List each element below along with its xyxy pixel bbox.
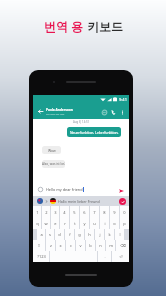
button[interactable]: p	[120, 218, 129, 229]
button[interactable]: 6	[80, 206, 89, 218]
staticText: Hello my dear friend	[46, 187, 83, 192]
button[interactable]: x	[56, 240, 65, 251]
staticText: 1	[36, 210, 39, 215]
button[interactable]: m	[106, 240, 115, 251]
button[interactable]: 7	[90, 206, 99, 218]
button[interactable]: s	[46, 229, 54, 240]
button[interactable]: Also, was ist los?	[42, 160, 65, 168]
staticText: k	[108, 232, 111, 237]
button[interactable]: Neuerfunktion. Leberfunktion.	[67, 127, 121, 137]
staticText: s	[49, 232, 51, 237]
button[interactable]: k	[105, 229, 114, 240]
button[interactable]: ?123	[33, 251, 49, 262]
button[interactable]: Back	[37, 108, 44, 115]
staticText: 9	[113, 210, 116, 215]
staticText: n	[99, 243, 102, 248]
button[interactable]: o	[110, 218, 119, 229]
button[interactable]: Confirm	[119, 198, 126, 205]
staticText: m	[109, 243, 113, 248]
staticText: f	[69, 232, 71, 237]
staticText: o	[113, 221, 116, 226]
staticText: v	[79, 243, 82, 248]
staticText: j	[99, 232, 101, 237]
staticText: ⏎	[119, 254, 123, 259]
staticText: h	[88, 232, 91, 237]
staticText: 3	[54, 210, 57, 215]
button[interactable]: Send	[117, 187, 125, 195]
staticText: 4	[63, 210, 66, 215]
staticText: e	[54, 221, 57, 226]
button[interactable]: 4	[60, 206, 69, 218]
button[interactable]: v	[76, 240, 85, 251]
button[interactable]: 8	[100, 206, 109, 218]
staticText: 키보드	[87, 19, 123, 34]
button[interactable]: n	[96, 240, 105, 251]
button[interactable]: t	[70, 218, 79, 229]
staticText: i	[104, 221, 106, 226]
staticText: 0	[123, 210, 126, 215]
staticText: u	[93, 221, 96, 226]
staticText: x	[59, 243, 62, 248]
button[interactable]: z	[46, 240, 55, 251]
staticText: r	[64, 221, 66, 226]
button[interactable]: 5	[70, 206, 79, 218]
button[interactable]: ⇧	[33, 240, 45, 251]
staticText: c	[70, 243, 72, 248]
button[interactable]: y	[80, 218, 89, 229]
button[interactable]: Video call	[100, 108, 108, 116]
button[interactable]: 3	[51, 206, 59, 218]
button[interactable]: j	[95, 229, 104, 240]
staticText: Wow	[48, 148, 56, 153]
staticText: 7	[93, 210, 96, 215]
staticText: 번역 용	[44, 18, 87, 34]
button[interactable]: i	[100, 218, 109, 229]
staticText: g	[78, 232, 81, 237]
button[interactable]: q	[33, 218, 41, 229]
button[interactable]: Call	[109, 108, 117, 116]
staticText: q	[36, 221, 39, 226]
button[interactable]: l	[115, 229, 124, 240]
staticText: Paola Andersoon	[46, 108, 73, 112]
staticText: y	[83, 221, 86, 226]
button[interactable]: Wow	[42, 146, 61, 154]
button[interactable]: g	[75, 229, 84, 240]
staticText: .	[104, 254, 106, 259]
button[interactable]: More options	[118, 108, 126, 116]
staticText: b	[89, 243, 92, 248]
button[interactable]: b	[86, 240, 95, 251]
button[interactable]: a	[37, 229, 45, 240]
button[interactable]: 1	[33, 206, 41, 218]
staticText: w	[44, 221, 48, 226]
staticText: a	[40, 232, 43, 237]
button[interactable]: ⏎	[112, 251, 129, 262]
button[interactable]: u	[90, 218, 99, 229]
staticText: l	[119, 232, 121, 237]
staticText: ⇧	[37, 243, 41, 248]
staticText: ⌫	[120, 243, 126, 248]
staticText: 8	[103, 210, 106, 215]
staticText: 6	[83, 210, 86, 215]
button[interactable]: 2	[42, 206, 50, 218]
button[interactable]: r	[60, 218, 69, 229]
staticText: z	[50, 243, 52, 248]
staticText: 2	[45, 210, 48, 215]
staticText: Also, was ist los?	[42, 162, 65, 166]
button[interactable]: 9	[110, 206, 119, 218]
button[interactable]: 0	[120, 206, 129, 218]
button[interactable]: Paola Andersoon	[46, 108, 100, 116]
button[interactable]: ⌫	[116, 240, 129, 251]
staticText: Neuerfunktion. Leberfunktion.	[70, 130, 119, 135]
staticText: last seen just now	[46, 113, 65, 116]
button[interactable]: f	[65, 229, 74, 240]
staticText: p	[123, 221, 126, 226]
button[interactable]: e	[51, 218, 59, 229]
button[interactable]: h	[85, 229, 94, 240]
button[interactable]: w	[42, 218, 50, 229]
staticText: 5	[73, 210, 76, 215]
button[interactable]: c	[66, 240, 75, 251]
staticText: ?123	[37, 254, 46, 259]
staticText: Hallo mein lieber Freund	[58, 199, 100, 204]
button[interactable]: d	[55, 229, 64, 240]
